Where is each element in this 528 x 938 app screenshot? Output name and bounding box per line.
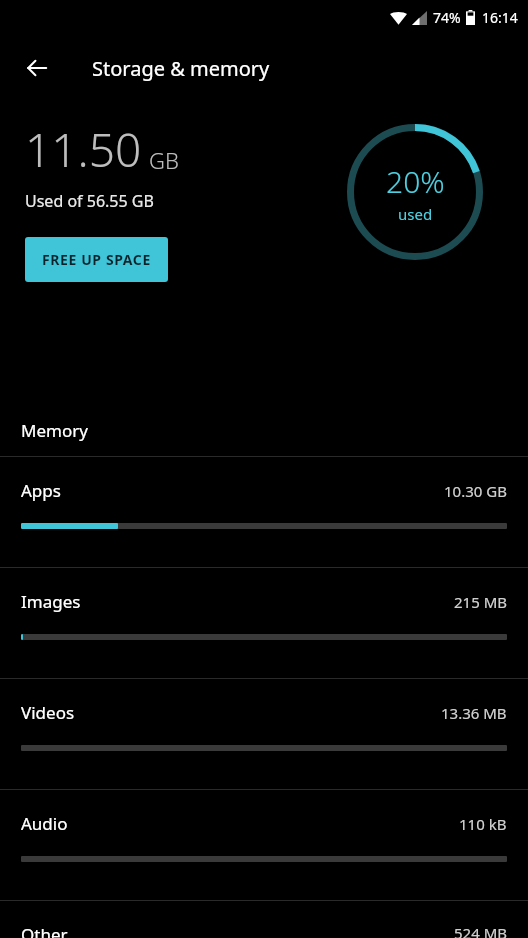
button[interactable]: Images [0,568,528,678]
staticText: 16:14 [482,8,518,27]
staticText: 74% [433,8,461,27]
staticText: Apps [21,479,61,502]
staticText: FREE UP SPACE [42,250,151,269]
button[interactable]: Back [13,44,61,92]
button[interactable]: Apps [0,457,528,567]
staticText: GB [149,145,179,175]
staticText: 10.30 GB [444,481,507,501]
button[interactable]: FREE UP SPACE [25,237,168,282]
staticText: Videos [21,701,75,724]
staticText: 524 MB [454,923,507,938]
staticText: Used of 56.55 GB [25,190,154,212]
staticText: Other [21,923,68,938]
staticText: 20% [386,161,445,202]
staticText: Storage & memory [92,55,270,82]
staticText: 13.36 MB [441,703,507,723]
button[interactable]: Videos [0,679,528,789]
staticText: used [398,204,433,224]
button[interactable]: Audio [0,790,528,900]
staticText: 215 MB [454,592,507,612]
staticText: Images [21,590,81,613]
staticText: Memory [21,419,88,442]
staticText: 110 kB [459,814,507,834]
staticText: Audio [21,812,68,835]
staticText: 11.50 [25,118,142,181]
button[interactable]: Other [0,901,528,938]
